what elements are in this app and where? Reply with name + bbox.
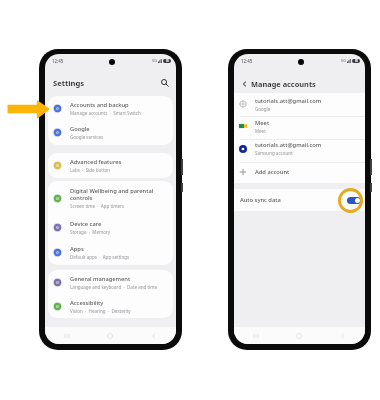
staticText: 5G [152,58,157,63]
button[interactable]: Recent apps [45,327,88,344]
staticText: Language and keyboard · Date and time [70,284,157,290]
staticText: Meet [255,119,270,127]
staticText: 85 [166,59,169,63]
staticText: General management [70,275,131,283]
staticText: Advanced features [70,158,122,166]
staticText: Google [255,106,271,112]
button[interactable]: Back [132,327,176,344]
button[interactable]: tutorials.att@gmail.com [234,93,365,115]
staticText: Meet [255,128,266,134]
button[interactable]: Back [238,77,251,90]
staticText: 12:45 [241,58,253,64]
staticText: tutorials.att@gmail.com [255,141,322,149]
button[interactable]: Auto sync data [234,189,365,211]
staticText: Labs · Side button [70,167,111,173]
staticText: tutorials.att@gmail.com [255,97,322,105]
button[interactable]: Add account [234,160,365,183]
button[interactable]: tutorials.att@gmail.com [234,137,365,160]
button[interactable]: Search [158,76,172,90]
button[interactable]: Device care [48,215,173,240]
staticText: Apps [70,245,84,253]
button[interactable]: Meet [234,115,365,137]
staticText: Device care [70,220,102,228]
button[interactable]: Advanced features [48,153,173,178]
staticText: Samsung account [255,150,293,156]
button[interactable]: Accounts and backup [48,96,173,120]
staticText: Vision · Hearing · Dexterity [70,308,131,314]
staticText: Auto sync data [240,196,281,204]
staticText: Add account [255,168,290,176]
staticText: Screen time · App timers [70,203,124,209]
button[interactable]: Recent apps [234,327,277,344]
button[interactable]: General management [48,270,173,294]
staticText: 12:45 [52,58,64,64]
staticText: Accounts and backup [70,101,129,109]
staticText: 85 [355,59,358,63]
staticText: Digital Wellbeing and parental controls [70,187,154,202]
staticText: Google [70,125,90,133]
staticText: Manage accounts · Smart Switch [70,110,141,116]
button[interactable]: Apps [48,240,173,265]
button[interactable]: Digital Wellbeing and parental controls [48,181,173,215]
staticText: Accessibility [70,299,104,307]
button[interactable]: Accessibility [48,294,173,318]
button[interactable]: Back [321,327,365,344]
staticText: Default apps · App settings [70,254,130,260]
staticText: Manage accounts [251,79,316,89]
staticText: Settings [53,78,85,88]
staticText: Google services [70,134,104,140]
button[interactable]: Google [48,120,173,145]
staticText: 5G [341,58,346,63]
staticText: Storage · Memory [70,229,111,235]
